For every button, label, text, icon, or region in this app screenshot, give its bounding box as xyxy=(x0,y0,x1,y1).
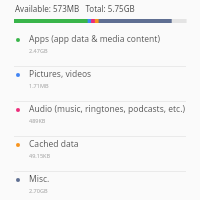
staticText: Available: 573MB Total: 5.75GB xyxy=(15,3,135,14)
staticText: 49.15KB xyxy=(29,152,51,159)
staticText: Audio (music, ringtones, podcasts, etc.) xyxy=(29,103,185,115)
staticText: Apps (app data & media content) xyxy=(29,33,160,45)
button[interactable]: Cached data xyxy=(0,137,200,171)
staticText: 1.71MB xyxy=(29,82,49,89)
button[interactable]: Misc. xyxy=(0,172,200,200)
staticText: Cached data xyxy=(29,138,79,150)
staticText: 2.70GB xyxy=(29,187,48,194)
button[interactable]: Audio (music, ringtones, podcasts, etc.) xyxy=(0,102,200,136)
staticText: 2.47GB xyxy=(29,47,48,54)
staticText: 489KB xyxy=(29,117,46,124)
button[interactable]: Pictures, videos xyxy=(0,67,200,101)
staticText: Misc. xyxy=(29,173,50,185)
staticText: Pictures, videos xyxy=(29,68,92,80)
button[interactable]: Apps (app data & media content) xyxy=(0,32,200,66)
